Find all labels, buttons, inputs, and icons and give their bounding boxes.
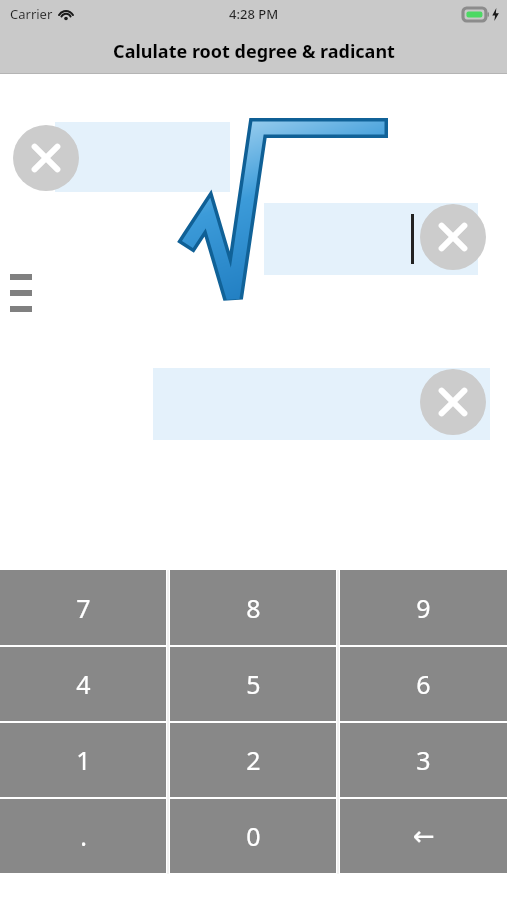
button[interactable]: Menu [4,268,38,318]
button[interactable]: Clear radicand [420,204,486,270]
button[interactable] [153,368,490,440]
staticText: 3 [416,743,431,777]
staticText: 0 [246,819,261,853]
button[interactable]: 4 [0,647,166,721]
button[interactable]: 0 [170,799,336,873]
button[interactable]: 6 [340,647,507,721]
staticText: 2 [246,743,261,777]
button[interactable]: 9 [340,570,507,645]
staticText: 9 [416,591,431,625]
button[interactable]: Clear result [420,369,486,435]
button[interactable]: 5 [170,647,336,721]
button[interactable]: 8 [170,570,336,645]
staticText: 1 [76,743,91,777]
staticText: ← [413,821,435,851]
button[interactable] [264,203,478,275]
staticText: 4 [76,667,91,701]
button[interactable]: . [0,799,166,873]
staticText: Calulate root degree & radicant [113,39,395,64]
staticText: Carrier [10,5,53,23]
staticText: 7 [76,591,91,625]
button[interactable]: 2 [170,723,336,797]
staticText: 4:28 PM [229,5,279,23]
staticText: 5 [246,667,261,701]
button[interactable]: 1 [0,723,166,797]
staticText: 8 [246,591,261,625]
staticText: . [80,819,87,853]
button[interactable] [55,122,230,192]
button[interactable]: Clear root degree [13,125,79,191]
button[interactable]: ← [340,799,507,873]
button[interactable]: 7 [0,570,166,645]
staticText: 6 [416,667,431,701]
button[interactable]: 3 [340,723,507,797]
